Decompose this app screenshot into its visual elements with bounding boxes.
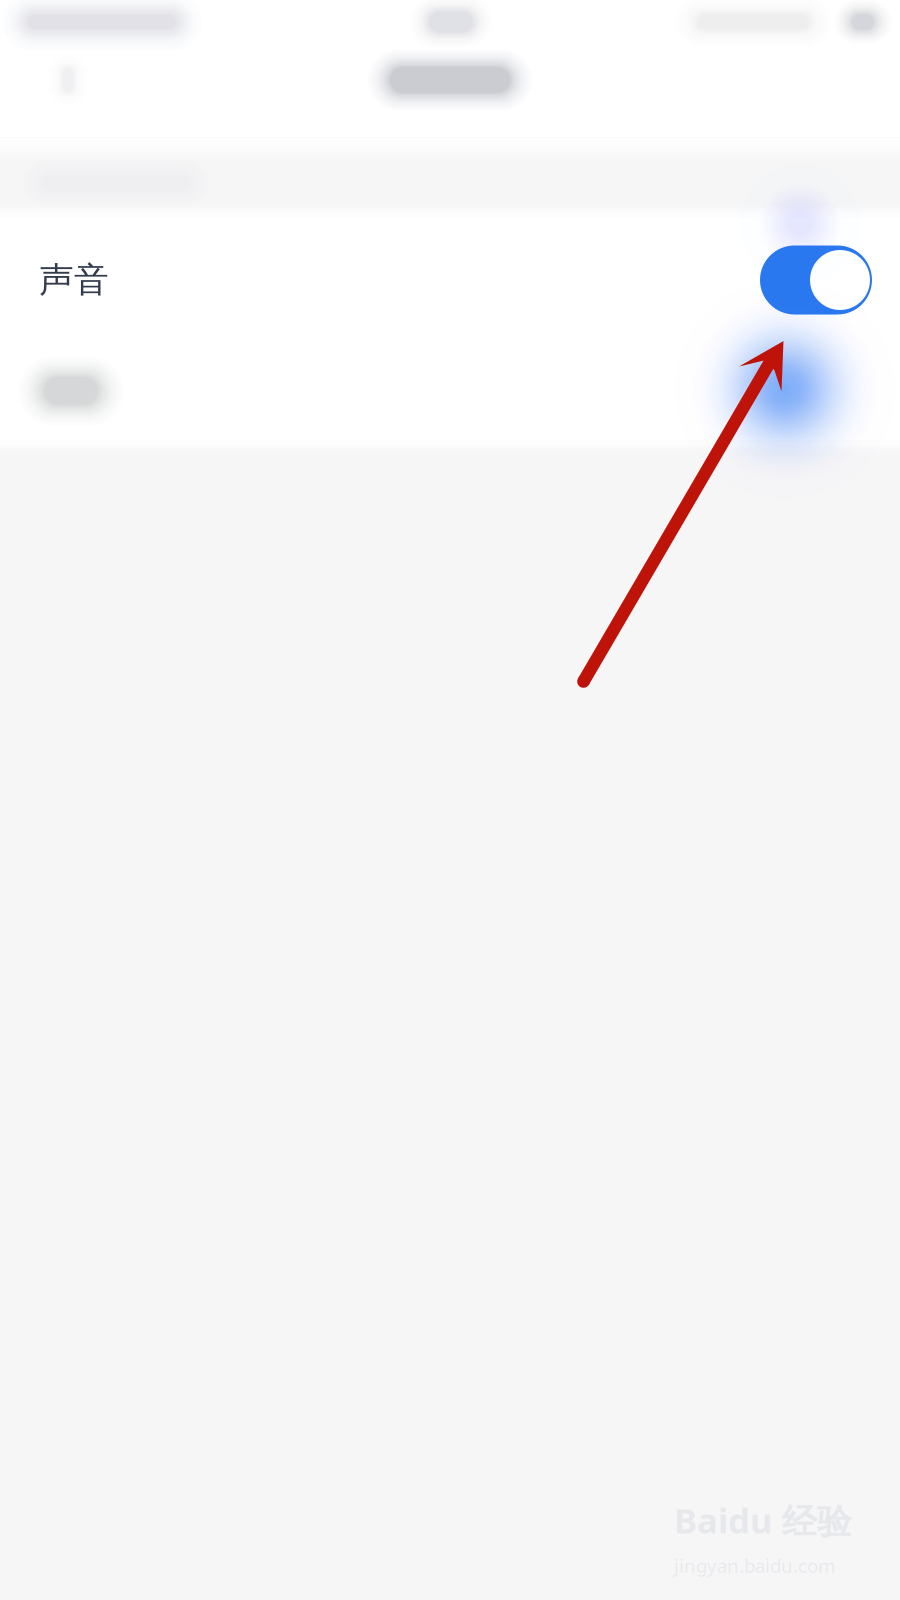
staticText: 声音 [39, 259, 109, 301]
staticText: Baidu 经验 [674, 1497, 852, 1543]
button[interactable]: 声音 [0, 218, 900, 342]
staticText: jingyan.baidu.com [674, 1553, 835, 1578]
